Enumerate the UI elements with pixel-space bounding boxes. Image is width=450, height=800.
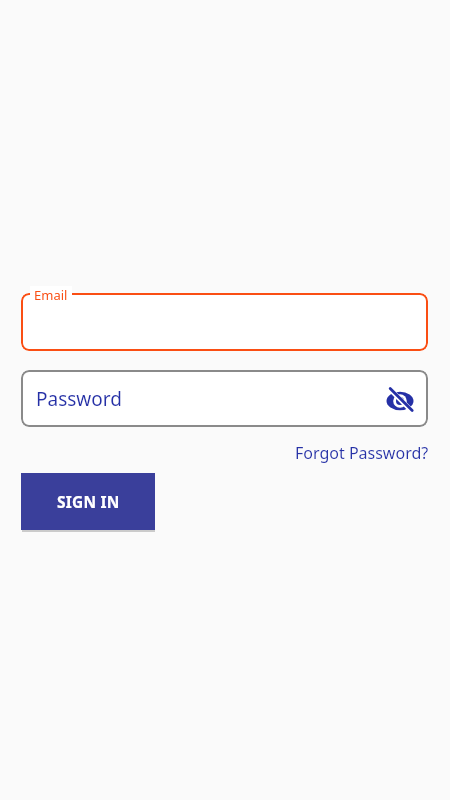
- button[interactable]: Password: [21, 370, 428, 427]
- staticText: Password: [36, 386, 122, 412]
- button[interactable]: SIGN IN: [21, 473, 155, 530]
- button[interactable]: Forgot Password?: [295, 442, 429, 464]
- staticText: Email: [34, 286, 68, 304]
- staticText: SIGN IN: [57, 491, 120, 512]
- button[interactable]: [21, 293, 428, 351]
- button[interactable]: [386, 387, 414, 415]
- staticText: Forgot Password?: [295, 442, 429, 464]
